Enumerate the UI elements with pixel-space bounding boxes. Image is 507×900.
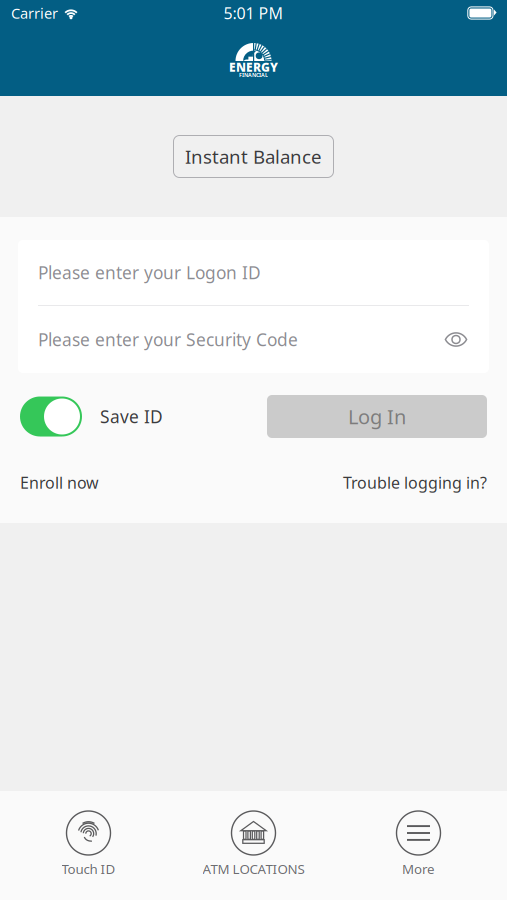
staticText: ATM LOCATIONS [202,860,304,878]
button[interactable]: Touch ID [6,791,171,900]
staticText: ENERGY [229,59,278,75]
button[interactable]: Please enter your Logon ID [18,240,489,305]
staticText: Carrier [11,3,58,23]
button[interactable]: Enroll now [20,472,99,493]
staticText: Enroll now [20,472,99,493]
button[interactable]: ATM LOCATIONS [171,791,336,900]
button[interactable]: Save ID [20,396,163,436]
staticText: Please enter your Security Code [38,328,298,351]
button[interactable]: More [336,791,501,900]
button[interactable]: Trouble logging in? [343,472,487,493]
button[interactable]: Instant Balance [173,135,333,177]
staticText: Log In [348,403,406,430]
staticText: Touch ID [61,860,115,878]
staticText: 5:01 PM [223,2,283,24]
button[interactable]: Please enter your Security Code [18,306,434,373]
button[interactable]: Show security code [434,317,478,361]
staticText: FINANCIAL [239,71,268,79]
staticText: Save ID [100,405,163,428]
staticText: More [402,860,435,878]
staticText: Trouble logging in? [343,472,487,493]
staticText: Instant Balance [185,144,322,169]
button[interactable]: Log In [267,395,487,438]
staticText: Please enter your Logon ID [38,261,261,284]
